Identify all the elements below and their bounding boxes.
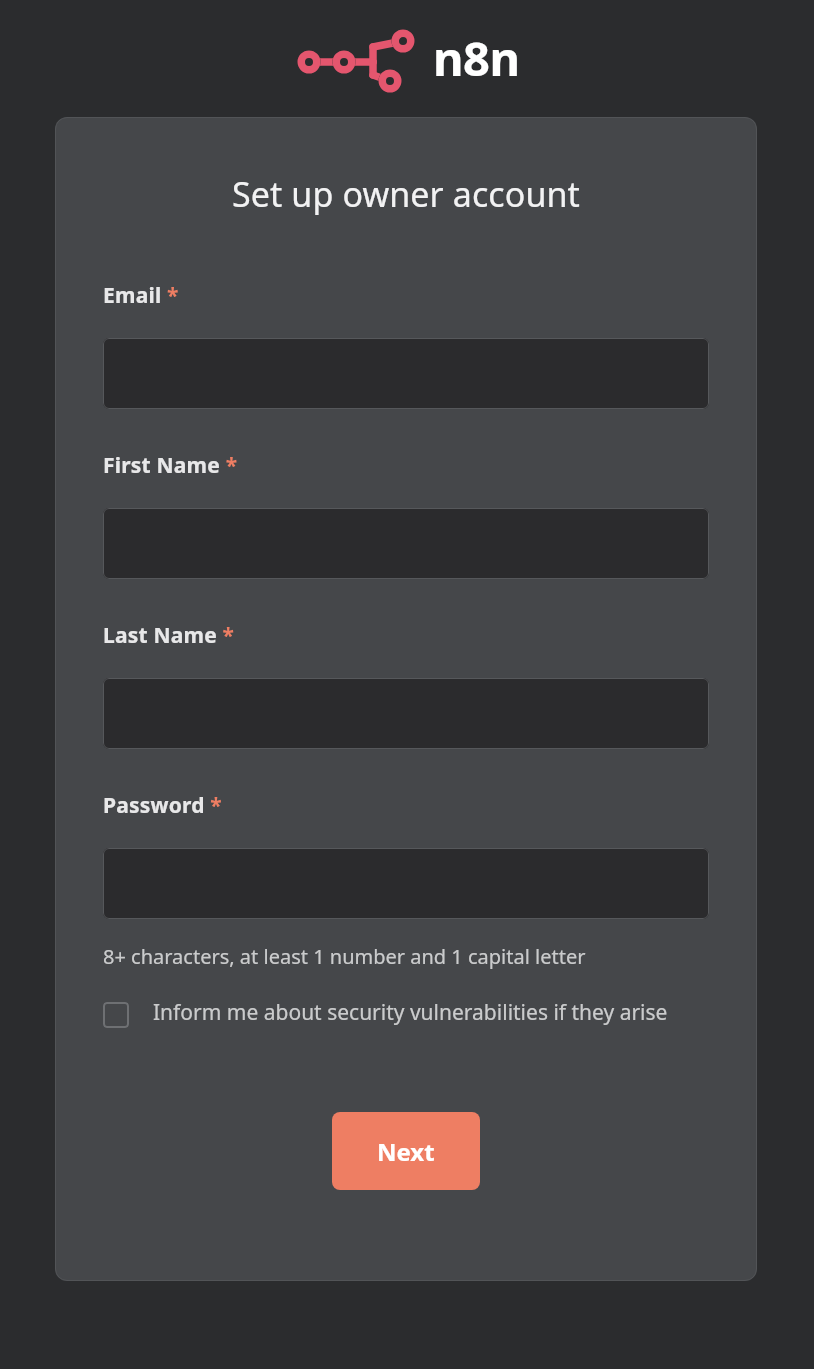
button[interactable]: Inform me about security vulnerabilities… bbox=[103, 998, 709, 1028]
staticText: 8+ characters, at least 1 number and 1 c… bbox=[103, 943, 586, 970]
staticText: Set up owner account bbox=[232, 171, 580, 217]
button[interactable] bbox=[103, 678, 709, 749]
staticText: Inform me about security vulnerabilities… bbox=[153, 998, 668, 1027]
staticText: Next bbox=[377, 1135, 435, 1168]
button[interactable]: Next bbox=[332, 1112, 480, 1190]
button[interactable] bbox=[103, 338, 709, 409]
staticText: n8n bbox=[433, 26, 520, 90]
button[interactable] bbox=[103, 848, 709, 919]
staticText: Password * bbox=[103, 791, 222, 820]
staticText: Last Name * bbox=[103, 621, 235, 650]
button[interactable] bbox=[103, 508, 709, 579]
staticText: Email * bbox=[103, 281, 179, 310]
staticText: First Name * bbox=[103, 451, 238, 480]
